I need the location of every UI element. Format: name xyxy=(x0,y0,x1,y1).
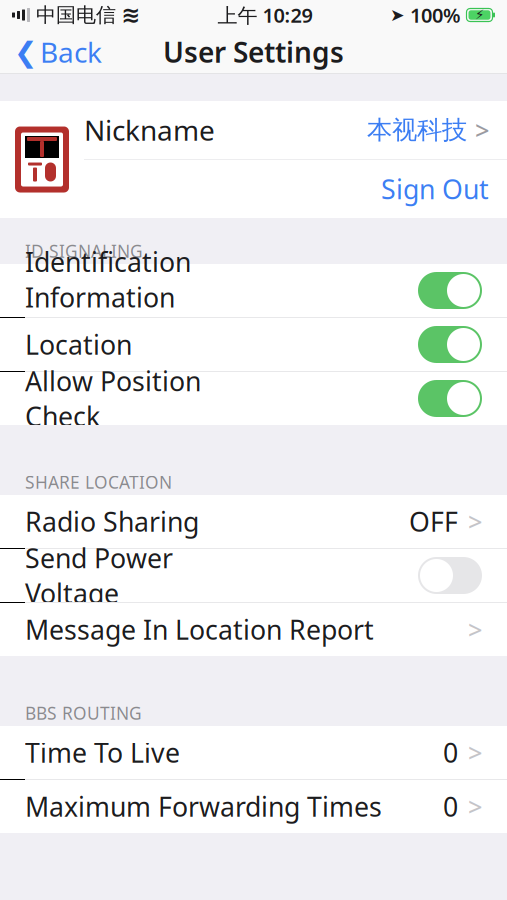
staticText: Allow Position Check xyxy=(25,363,201,434)
staticText: Sign Out xyxy=(381,171,489,207)
staticText: Nickname xyxy=(84,111,215,149)
staticText: Send Power Voltage xyxy=(25,540,173,611)
staticText: ID SIGNALING xyxy=(25,239,143,262)
staticText: 100% xyxy=(405,2,466,28)
button[interactable]: Maximum Forwarding Times xyxy=(0,780,507,833)
staticText: > xyxy=(468,505,482,538)
staticText: ❮ xyxy=(14,36,37,68)
button[interactable]: ❮ xyxy=(0,30,116,74)
staticText: Message In Location Report xyxy=(25,612,374,647)
button[interactable]: Allow Position Check xyxy=(0,372,507,425)
staticText: ⚡︎ xyxy=(475,7,484,22)
staticText: 0 xyxy=(443,789,458,824)
button[interactable]: Radio Sharing xyxy=(0,495,507,548)
staticText: 0 xyxy=(443,735,458,770)
staticText: 本视科技 xyxy=(25,316,93,337)
staticText: > xyxy=(475,113,489,147)
button[interactable]: Identification Information xyxy=(0,264,507,317)
staticText: SHARE LOCATION xyxy=(25,470,172,493)
button[interactable]: Send Power Voltage xyxy=(0,549,507,602)
button[interactable]: Time To Live xyxy=(0,726,507,779)
staticText: ≋ xyxy=(121,2,140,28)
staticText: Maximum Forwarding Times xyxy=(25,789,382,824)
button[interactable]: Location xyxy=(0,318,507,371)
staticText: Time To Live xyxy=(25,735,180,770)
staticText: Identification Information xyxy=(25,244,191,315)
staticText: > xyxy=(468,790,482,823)
staticText: BBS ROUTING xyxy=(25,701,142,724)
staticText: 中国电信 xyxy=(30,3,122,27)
button[interactable]: Message In Location Report xyxy=(0,603,507,656)
staticText: > xyxy=(468,613,482,646)
staticText: Back xyxy=(40,33,102,71)
staticText: > xyxy=(468,736,482,769)
staticText: Location xyxy=(25,327,132,362)
staticText: User Settings xyxy=(163,33,344,71)
staticText: ➤ xyxy=(390,5,405,25)
staticText: OFF xyxy=(409,504,458,539)
staticText: 上午 10:29 xyxy=(217,2,312,28)
button[interactable]: Nickname xyxy=(84,101,507,159)
staticText: 本视科技 xyxy=(367,114,467,145)
staticText: Radio Sharing xyxy=(25,504,199,539)
button[interactable]: Sign Out xyxy=(84,160,507,218)
